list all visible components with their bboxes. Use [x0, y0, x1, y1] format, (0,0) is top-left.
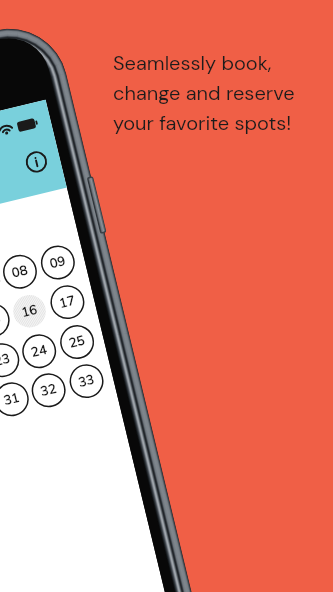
staticText: Seamlessly book, change and reserve your… — [113, 50, 295, 136]
